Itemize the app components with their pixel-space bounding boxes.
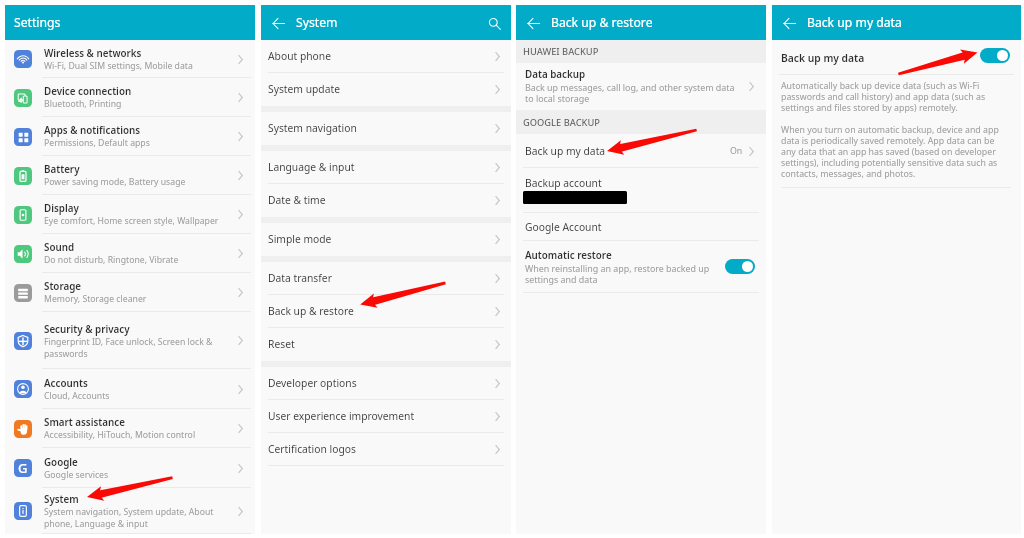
- button[interactable]: Security & privacy: [5, 312, 255, 369]
- staticText: Cloud, Accounts: [44, 390, 110, 402]
- staticText: Automatic restore: [525, 249, 612, 262]
- staticText: Back up & restore: [268, 304, 354, 318]
- button[interactable]: Back: [772, 6, 806, 40]
- staticText: Back up my data: [525, 144, 606, 158]
- staticText: Google Account: [525, 220, 602, 234]
- button[interactable]: Back: [261, 6, 295, 40]
- button[interactable]: Apps & notifications: [5, 117, 255, 156]
- button[interactable]: Backup account: [516, 168, 766, 213]
- button[interactable]: Storage: [5, 273, 255, 312]
- staticText: Google services: [44, 469, 109, 481]
- staticText: When you turn on automatic backup, devic…: [781, 124, 999, 180]
- staticText: Fingerprint ID, Face unlock, Screen lock…: [44, 336, 213, 359]
- staticText: Accessibility, HiTouch, Motion control: [44, 429, 196, 441]
- staticText: Display: [44, 202, 79, 215]
- staticText: Date & time: [268, 193, 326, 207]
- staticText: User experience improvement: [268, 409, 415, 423]
- staticText: Data backup: [525, 68, 586, 81]
- staticText: System navigation, System update, About …: [44, 506, 214, 529]
- button[interactable]: Certification logos: [261, 433, 511, 466]
- button[interactable]: Back up my data: [772, 40, 1021, 75]
- button[interactable]: Toggle: [725, 259, 755, 274]
- button[interactable]: Smart assistance: [5, 409, 255, 448]
- button[interactable]: Developer options: [261, 367, 511, 400]
- button[interactable]: Device connection: [5, 78, 255, 117]
- staticText: Eye comfort, Home screen style, Wallpape…: [44, 215, 219, 227]
- staticText: Wireless & networks: [44, 47, 142, 60]
- button[interactable]: Date & time: [261, 184, 511, 217]
- button[interactable]: Reset: [261, 328, 511, 361]
- staticText: About phone: [268, 49, 331, 63]
- button[interactable]: Back up & restore: [261, 295, 511, 328]
- staticText: HUAWEI BACKUP: [523, 45, 599, 58]
- staticText: Google: [44, 456, 78, 469]
- staticText: Back up my data: [781, 51, 865, 65]
- button[interactable]: Language & input: [261, 151, 511, 184]
- button[interactable]: Sound: [5, 234, 255, 273]
- staticText: Battery: [44, 163, 80, 176]
- staticText: Backup account: [525, 176, 602, 190]
- button[interactable]: Accounts: [5, 369, 255, 409]
- staticText: Memory, Storage cleaner: [44, 293, 147, 305]
- button[interactable]: Search: [477, 6, 511, 40]
- staticText: System: [296, 14, 338, 31]
- staticText: Certification logos: [268, 442, 356, 456]
- button[interactable]: Automatic restore: [516, 241, 766, 293]
- staticText: Back up & restore: [551, 14, 653, 31]
- staticText: System update: [268, 82, 340, 96]
- button[interactable]: Wireless & networks: [5, 40, 255, 78]
- staticText: Security & privacy: [44, 323, 130, 336]
- staticText: On: [730, 145, 743, 157]
- staticText: Settings: [14, 14, 61, 31]
- staticText: Accounts: [44, 377, 88, 390]
- staticText: Device connection: [44, 85, 132, 98]
- staticText: Storage: [44, 280, 82, 293]
- button[interactable]: Back up my data: [516, 134, 766, 168]
- button[interactable]: Battery: [5, 156, 255, 195]
- staticText: Apps & notifications: [44, 124, 141, 137]
- staticText: Back up messages, call log, and other sy…: [525, 81, 735, 105]
- staticText: Back up my data: [807, 14, 902, 31]
- staticText: Permissions, Default apps: [44, 137, 150, 149]
- button[interactable]: Back: [516, 6, 550, 40]
- button[interactable]: Data backup: [516, 63, 766, 110]
- button[interactable]: Simple mode: [261, 223, 511, 256]
- button[interactable]: About phone: [261, 40, 511, 73]
- button[interactable]: Toggle: [980, 48, 1010, 63]
- staticText: Simple mode: [268, 232, 332, 246]
- staticText: G: [18, 459, 28, 477]
- staticText: System: [44, 493, 79, 506]
- button[interactable]: G: [5, 448, 255, 488]
- staticText: Do not disturb, Ringtone, Vibrate: [44, 254, 179, 266]
- button[interactable]: User experience improvement: [261, 400, 511, 433]
- staticText: Power saving mode, Battery usage: [44, 176, 186, 188]
- button[interactable]: System update: [261, 73, 511, 106]
- staticText: Developer options: [268, 376, 357, 390]
- staticText: Automatically back up device data (such …: [781, 80, 986, 114]
- button[interactable]: Data transfer: [261, 262, 511, 295]
- staticText: Reset: [268, 337, 295, 351]
- button[interactable]: System: [5, 488, 255, 534]
- staticText: When reinstalling an app, restore backed…: [525, 262, 710, 285]
- staticText: System navigation: [268, 121, 357, 135]
- staticText: Language & input: [268, 160, 355, 174]
- button[interactable]: Google Account: [516, 213, 766, 241]
- staticText: Bluetooth, Printing: [44, 98, 122, 110]
- staticText: Wi-Fi, Dual SIM settings, Mobile data: [44, 60, 193, 72]
- staticText: GOOGLE BACKUP: [523, 116, 600, 129]
- button[interactable]: System navigation: [261, 112, 511, 145]
- staticText: Sound: [44, 241, 75, 254]
- staticText: Data transfer: [268, 271, 332, 285]
- staticText: Smart assistance: [44, 416, 125, 429]
- button[interactable]: Display: [5, 195, 255, 234]
